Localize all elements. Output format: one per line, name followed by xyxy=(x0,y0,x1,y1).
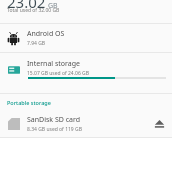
staticText: Android OS xyxy=(27,29,65,39)
staticText: 8.34 GB used of 119 GB xyxy=(27,126,82,133)
staticText: 23.02 xyxy=(7,0,46,12)
staticText: SanDisk SD card xyxy=(27,115,81,125)
staticText: 15.07 GB used of 24.06 GB xyxy=(27,70,89,77)
staticText: Portable storage xyxy=(7,99,51,106)
staticText: 7.94 GB xyxy=(27,40,46,47)
staticText: Internal storage xyxy=(27,59,80,69)
staticText: Total used of 32.00 GB xyxy=(7,7,60,14)
button[interactable]: Android OS xyxy=(0,24,172,52)
staticText: GB xyxy=(48,1,58,11)
button[interactable]: Internal storage xyxy=(0,53,172,93)
button[interactable]: Eject SD card xyxy=(146,110,172,137)
button[interactable]: SanDisk SD card xyxy=(0,110,172,137)
